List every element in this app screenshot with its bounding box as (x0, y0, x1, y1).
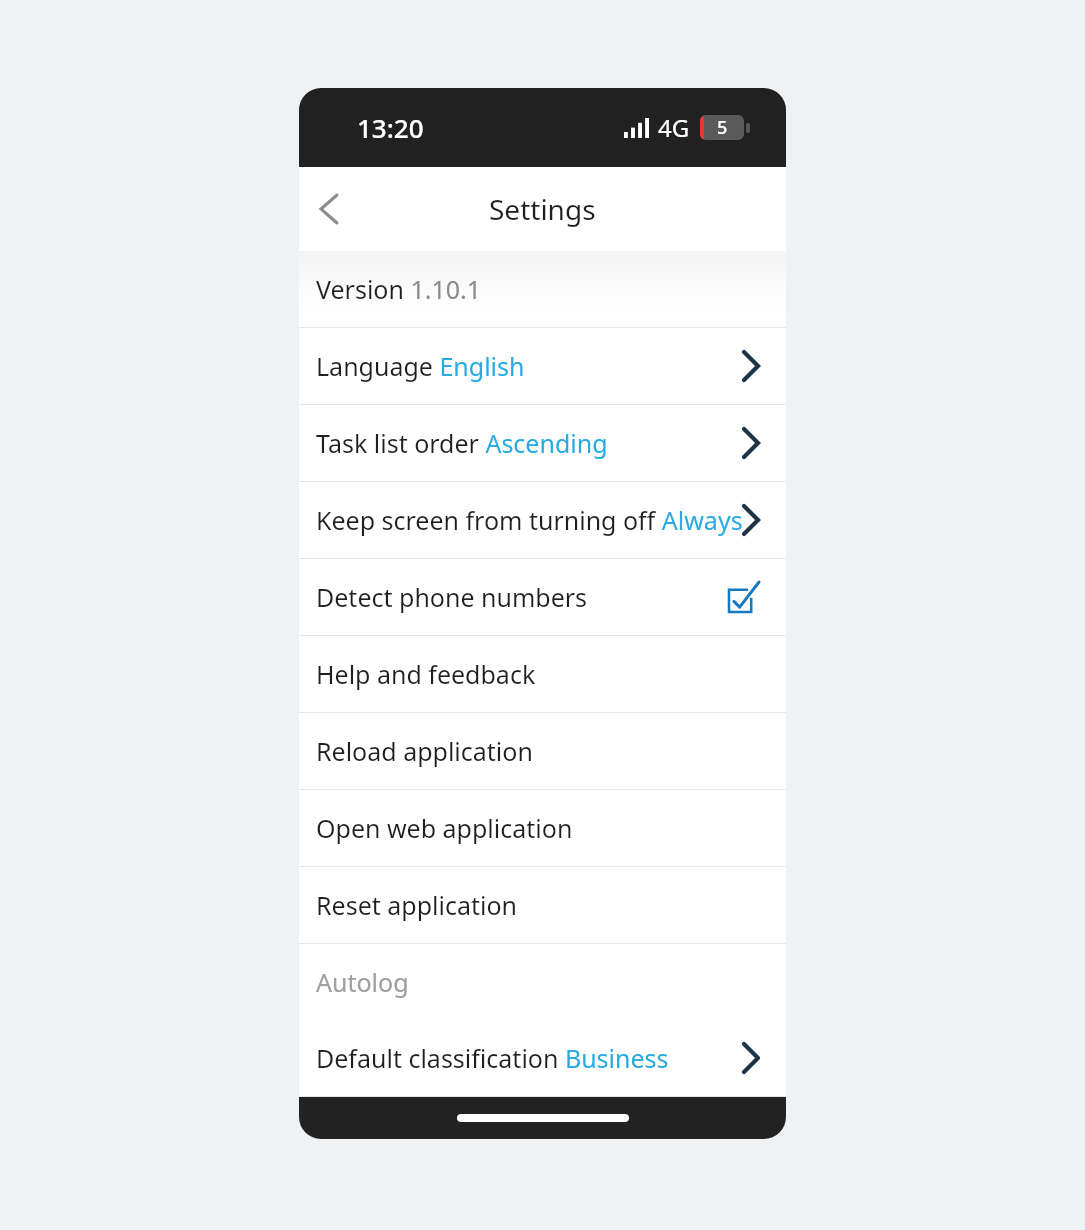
staticText: Settings (489, 190, 596, 228)
button[interactable]: Open web application (299, 790, 786, 866)
staticText: Autolog (316, 965, 409, 999)
button[interactable]: Detect phone numbers (299, 559, 786, 635)
staticText: Version 1.10.1 (316, 272, 482, 306)
staticText: Detect phone numbers (316, 580, 588, 614)
button[interactable]: Back (299, 179, 359, 239)
button[interactable]: Language English (299, 328, 786, 404)
staticText: Help and feedback (316, 657, 536, 691)
button[interactable]: Keep screen from turning off Always (299, 482, 786, 558)
staticText: 5 (717, 115, 728, 140)
staticText: Default classification Business (316, 1041, 669, 1075)
staticText: Keep screen from turning off Always (316, 503, 743, 537)
button[interactable]: Help and feedback (299, 636, 786, 712)
button[interactable]: Reset application (299, 867, 786, 943)
staticText: Task list order Ascending (316, 426, 608, 460)
staticText: Reload application (316, 734, 533, 768)
button[interactable]: Task list order Ascending (299, 405, 786, 481)
button[interactable]: Default classification Business (299, 1020, 786, 1096)
staticText: Open web application (316, 811, 573, 845)
staticText: Reset application (316, 888, 518, 922)
staticText: 4G (658, 111, 690, 144)
staticText: 13:20 (357, 110, 424, 145)
button[interactable]: Version 1.10.1 (299, 251, 786, 327)
button[interactable]: Reload application (299, 713, 786, 789)
staticText: Language English (316, 349, 525, 383)
